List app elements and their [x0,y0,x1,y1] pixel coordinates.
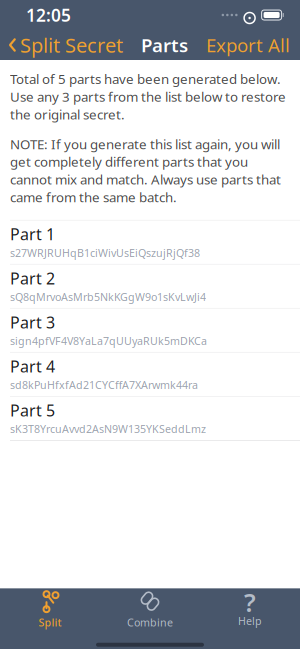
button[interactable]: Split Secret [0,27,123,63]
staticText: NOTE: If you generate this list again, y… [10,135,281,206]
staticText: Total of 5 parts have been generated bel… [10,70,286,123]
staticText: Help [238,614,262,628]
staticText: Export All [206,33,290,57]
button[interactable]: Part 5 [0,397,300,440]
staticText: sK3T8YrcuAvvd2AsN9W135YKSeddLmz [10,422,206,436]
staticText: 12:05 [26,3,71,26]
staticText: Split Secret [20,32,123,58]
button[interactable]: Part 2 [0,265,300,308]
staticText: sign4pfVF4V8YaLa7qUUyaRUk5mDKCa [10,334,207,348]
button[interactable]: Split [0,589,100,631]
button[interactable]: ? [200,589,300,631]
staticText: s27WRJRUHqB1ciWivUsEiQszujRjQf38 [10,246,200,260]
staticText: Part 1 [10,223,55,245]
staticText: Part 2 [10,268,55,289]
staticText: Part 3 [10,312,55,333]
staticText: sQ8qMrvoAsMrb5NkKGgW9o1sKvLwJi4 [10,290,206,304]
staticText: ? [244,585,256,619]
button[interactable]: Export All [206,28,300,62]
button[interactable]: Part 4 [0,353,300,396]
button[interactable]: Part 3 [0,309,300,352]
staticText: Parts [141,33,188,57]
staticText: sd8kPuHfxfAd21CYCffA7XArwmk44ra [10,378,198,392]
staticText: Part 5 [10,400,55,421]
staticText: Combine [127,615,173,629]
button[interactable]: Part 1 [0,220,300,264]
staticText: Part 4 [10,356,55,377]
button[interactable]: Combine [100,589,200,631]
staticText: Split [38,615,61,629]
